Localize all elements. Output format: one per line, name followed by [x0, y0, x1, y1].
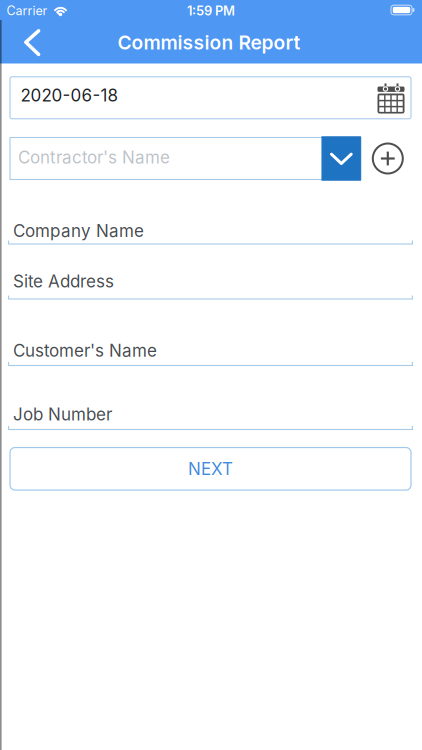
- button[interactable]: Customer's Name: [0, 0, 422, 750]
- button[interactable]: Add contractor: [373, 143, 403, 173]
- staticText: Site Address: [13, 271, 114, 291]
- staticText: NEXT: [188, 458, 233, 479]
- button[interactable]: NEXT: [10, 448, 411, 490]
- staticText: Customer's Name: [13, 340, 157, 361]
- staticText: Contractor's Name: [18, 147, 170, 168]
- staticText: 2020-06-18: [20, 85, 118, 105]
- button[interactable]: Site Address: [0, 0, 422, 750]
- button[interactable]: Company Name: [0, 0, 422, 750]
- staticText: Company Name: [13, 220, 144, 241]
- button[interactable]: Back: [0, 0, 422, 63]
- button[interactable]: Select contractor: [0, 0, 422, 200]
- staticText: 1:59 PM: [187, 3, 235, 19]
- staticText: Job Number: [13, 404, 112, 424]
- button[interactable]: Job Number: [0, 0, 422, 750]
- staticText: Carrier: [7, 3, 48, 18]
- button[interactable]: 2020-06-18: [0, 0, 422, 140]
- staticText: Commission Report: [117, 31, 300, 54]
